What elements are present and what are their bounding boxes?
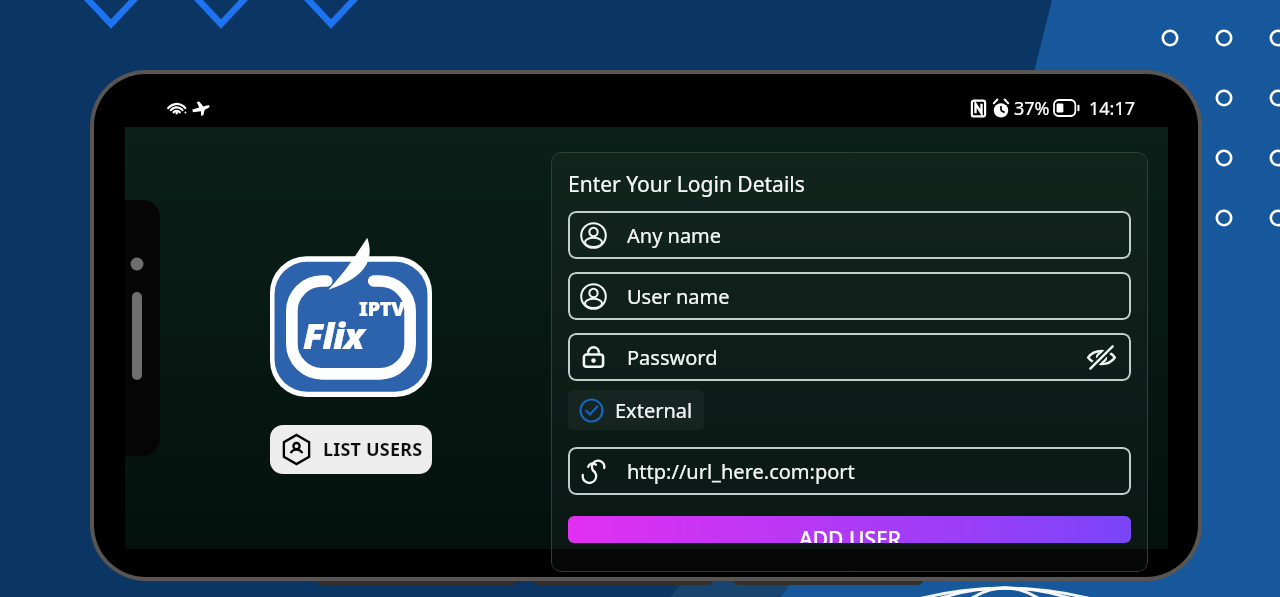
staticText: ADD USER [799,525,901,543]
button[interactable]: ADD USER [568,516,1131,543]
button[interactable]: External [568,390,704,430]
staticText: 14:17 [1089,96,1136,121]
staticText: Any name [627,222,722,249]
button[interactable]: Any name [568,211,1131,259]
button[interactable]: User name [568,272,1131,320]
staticText: http://url_here.com:port [627,458,855,485]
staticText: User name [627,283,730,310]
button[interactable]: http://url_here.com:port [568,447,1131,495]
button[interactable]: LIST USERS [270,425,432,474]
staticText: IPTV [359,295,405,322]
staticText: 37% [1014,96,1050,121]
button[interactable]: Password [568,333,1131,381]
staticText: Enter Your Login Details [568,170,805,199]
staticText: External [615,397,693,424]
other: Show password [1086,342,1117,373]
staticText: Password [627,344,718,371]
staticText: LIST USERS [323,437,423,462]
staticText: Flix [303,311,364,360]
